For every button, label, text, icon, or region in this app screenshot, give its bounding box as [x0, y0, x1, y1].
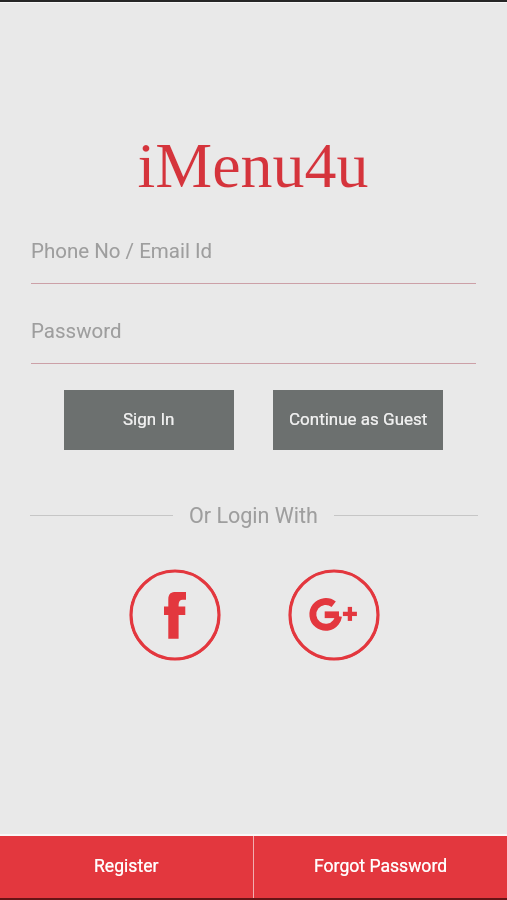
staticText: Sign In [123, 409, 175, 429]
button[interactable]: Phone No / Email Id [31, 238, 476, 284]
button[interactable]: Password [31, 318, 476, 364]
button[interactable]: Sign in with Facebook [129, 569, 221, 661]
button[interactable]: Continue as Guest [273, 390, 443, 450]
staticText: Continue as Guest [289, 409, 428, 429]
button[interactable]: Forgot Password [254, 836, 507, 900]
button[interactable]: Sign in with Google [288, 569, 380, 661]
staticText: Phone No / Email Id [31, 239, 213, 263]
staticText: Password [31, 319, 122, 343]
button[interactable]: Register [0, 836, 253, 900]
staticText: Forgot Password [314, 856, 448, 877]
staticText: Or Login With [189, 503, 318, 528]
button[interactable]: Sign In [64, 390, 234, 450]
staticText: Register [94, 856, 159, 877]
staticText: iMenu4u [137, 130, 369, 201]
